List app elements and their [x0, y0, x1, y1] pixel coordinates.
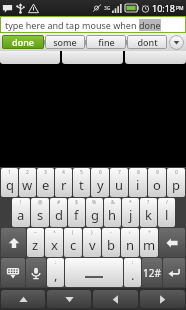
button[interactable]: &	[104, 198, 121, 227]
staticText: u	[115, 176, 124, 194]
staticText: type here and tap mouse when	[5, 19, 139, 31]
button[interactable]: ~	[27, 228, 44, 257]
button[interactable]: some	[45, 35, 85, 49]
button[interactable]: $	[68, 198, 85, 227]
button[interactable]: Backspace	[159, 228, 185, 257]
button[interactable]: fine	[86, 35, 126, 49]
button[interactable]: %	[86, 198, 103, 227]
staticText: 2	[26, 169, 29, 176]
button[interactable]: (	[64, 228, 82, 257]
button[interactable]: Left	[93, 290, 138, 308]
staticText: z	[32, 236, 39, 254]
staticText: !	[20, 199, 22, 206]
button[interactable]: 6	[91, 168, 109, 197]
staticText: m	[143, 236, 156, 254]
staticText: dont	[137, 36, 158, 48]
staticText: ?	[147, 199, 150, 206]
button[interactable]	[65, 258, 123, 287]
staticText: 7	[118, 169, 121, 176]
button[interactable]: Shift	[1, 228, 26, 257]
button[interactable]: 8	[129, 168, 147, 197]
staticText: j	[129, 206, 133, 224]
staticText: h	[108, 206, 117, 224]
button[interactable]: 2	[19, 168, 36, 197]
staticText: fine	[98, 36, 115, 48]
button[interactable]: /	[158, 198, 175, 227]
staticText: +	[148, 229, 151, 236]
staticText: 4	[62, 169, 65, 176]
staticText: d	[55, 206, 63, 224]
staticText: @	[38, 199, 43, 206]
button[interactable]: done	[2, 35, 44, 49]
button[interactable]: type here and tap mouse when	[1, 17, 185, 32]
button[interactable]: ^	[45, 228, 63, 257]
staticText: *	[129, 199, 132, 206]
button[interactable]: 9	[148, 168, 166, 197]
staticText: y	[97, 176, 104, 194]
staticText: ‹	[129, 229, 131, 236]
staticText: 3	[44, 169, 47, 176]
staticText: :	[55, 259, 57, 266]
button[interactable]: @	[31, 198, 49, 227]
staticText: 9	[156, 169, 159, 176]
staticText: some	[53, 36, 77, 48]
staticText: 10:18	[152, 2, 176, 14]
staticText: n	[126, 236, 135, 254]
staticText: done	[12, 36, 34, 48]
button[interactable]: Enter	[163, 258, 185, 287]
staticText: $	[75, 199, 78, 206]
staticText: q	[6, 176, 14, 194]
button[interactable]: *	[122, 198, 139, 227]
staticText: %	[92, 199, 97, 206]
button[interactable]: More suggestions	[169, 35, 184, 50]
staticText: #	[57, 199, 61, 206]
button[interactable]	[0, 51, 60, 64]
button[interactable]: 5	[73, 168, 90, 197]
button[interactable]: Right	[140, 290, 185, 308]
staticText: 6	[99, 169, 102, 176]
staticText: 1	[8, 169, 11, 176]
button[interactable]: -	[102, 228, 120, 257]
button[interactable]: Voice input	[26, 258, 46, 287]
staticText: g	[91, 206, 99, 224]
staticText: (	[72, 229, 74, 236]
staticText: x	[51, 236, 58, 254]
staticText: -	[110, 229, 112, 236]
staticText: 0	[175, 169, 178, 176]
button[interactable]: ;	[124, 258, 141, 287]
staticText: 12#	[143, 266, 161, 280]
button[interactable]: :	[47, 258, 64, 287]
staticText: l	[165, 206, 169, 224]
staticText: 3G	[104, 5, 111, 12]
button[interactable]: 4	[55, 168, 72, 197]
staticText: w	[22, 176, 33, 194]
button[interactable]	[125, 51, 186, 64]
button[interactable]: Keyboard settings	[1, 258, 25, 287]
button[interactable]: 12#	[142, 258, 162, 287]
button[interactable]: 7	[110, 168, 128, 197]
staticText: /	[166, 199, 168, 206]
staticText: c	[70, 236, 77, 254]
button[interactable]: 1	[1, 168, 18, 197]
staticText: done	[139, 19, 161, 31]
button[interactable]: ?	[140, 198, 157, 227]
button[interactable]: ‹	[121, 228, 139, 257]
button[interactable]: 0	[167, 168, 185, 197]
button[interactable]: +	[140, 228, 158, 257]
button[interactable]	[62, 51, 123, 64]
staticText: o	[153, 176, 161, 194]
button[interactable]: )	[83, 228, 101, 257]
button[interactable]: dont	[127, 35, 167, 49]
staticText: f	[74, 206, 79, 224]
button[interactable]: #	[50, 198, 67, 227]
staticText: 8	[137, 169, 140, 176]
button[interactable]: Down	[47, 290, 91, 308]
button[interactable]: 3	[37, 168, 54, 197]
staticText: &	[111, 199, 115, 206]
staticText: p	[172, 176, 180, 194]
button[interactable]: Up	[1, 290, 45, 308]
button[interactable]: !	[12, 198, 30, 227]
staticText: ;	[132, 259, 134, 266]
staticText: r	[61, 176, 67, 194]
staticText: e	[42, 176, 50, 194]
